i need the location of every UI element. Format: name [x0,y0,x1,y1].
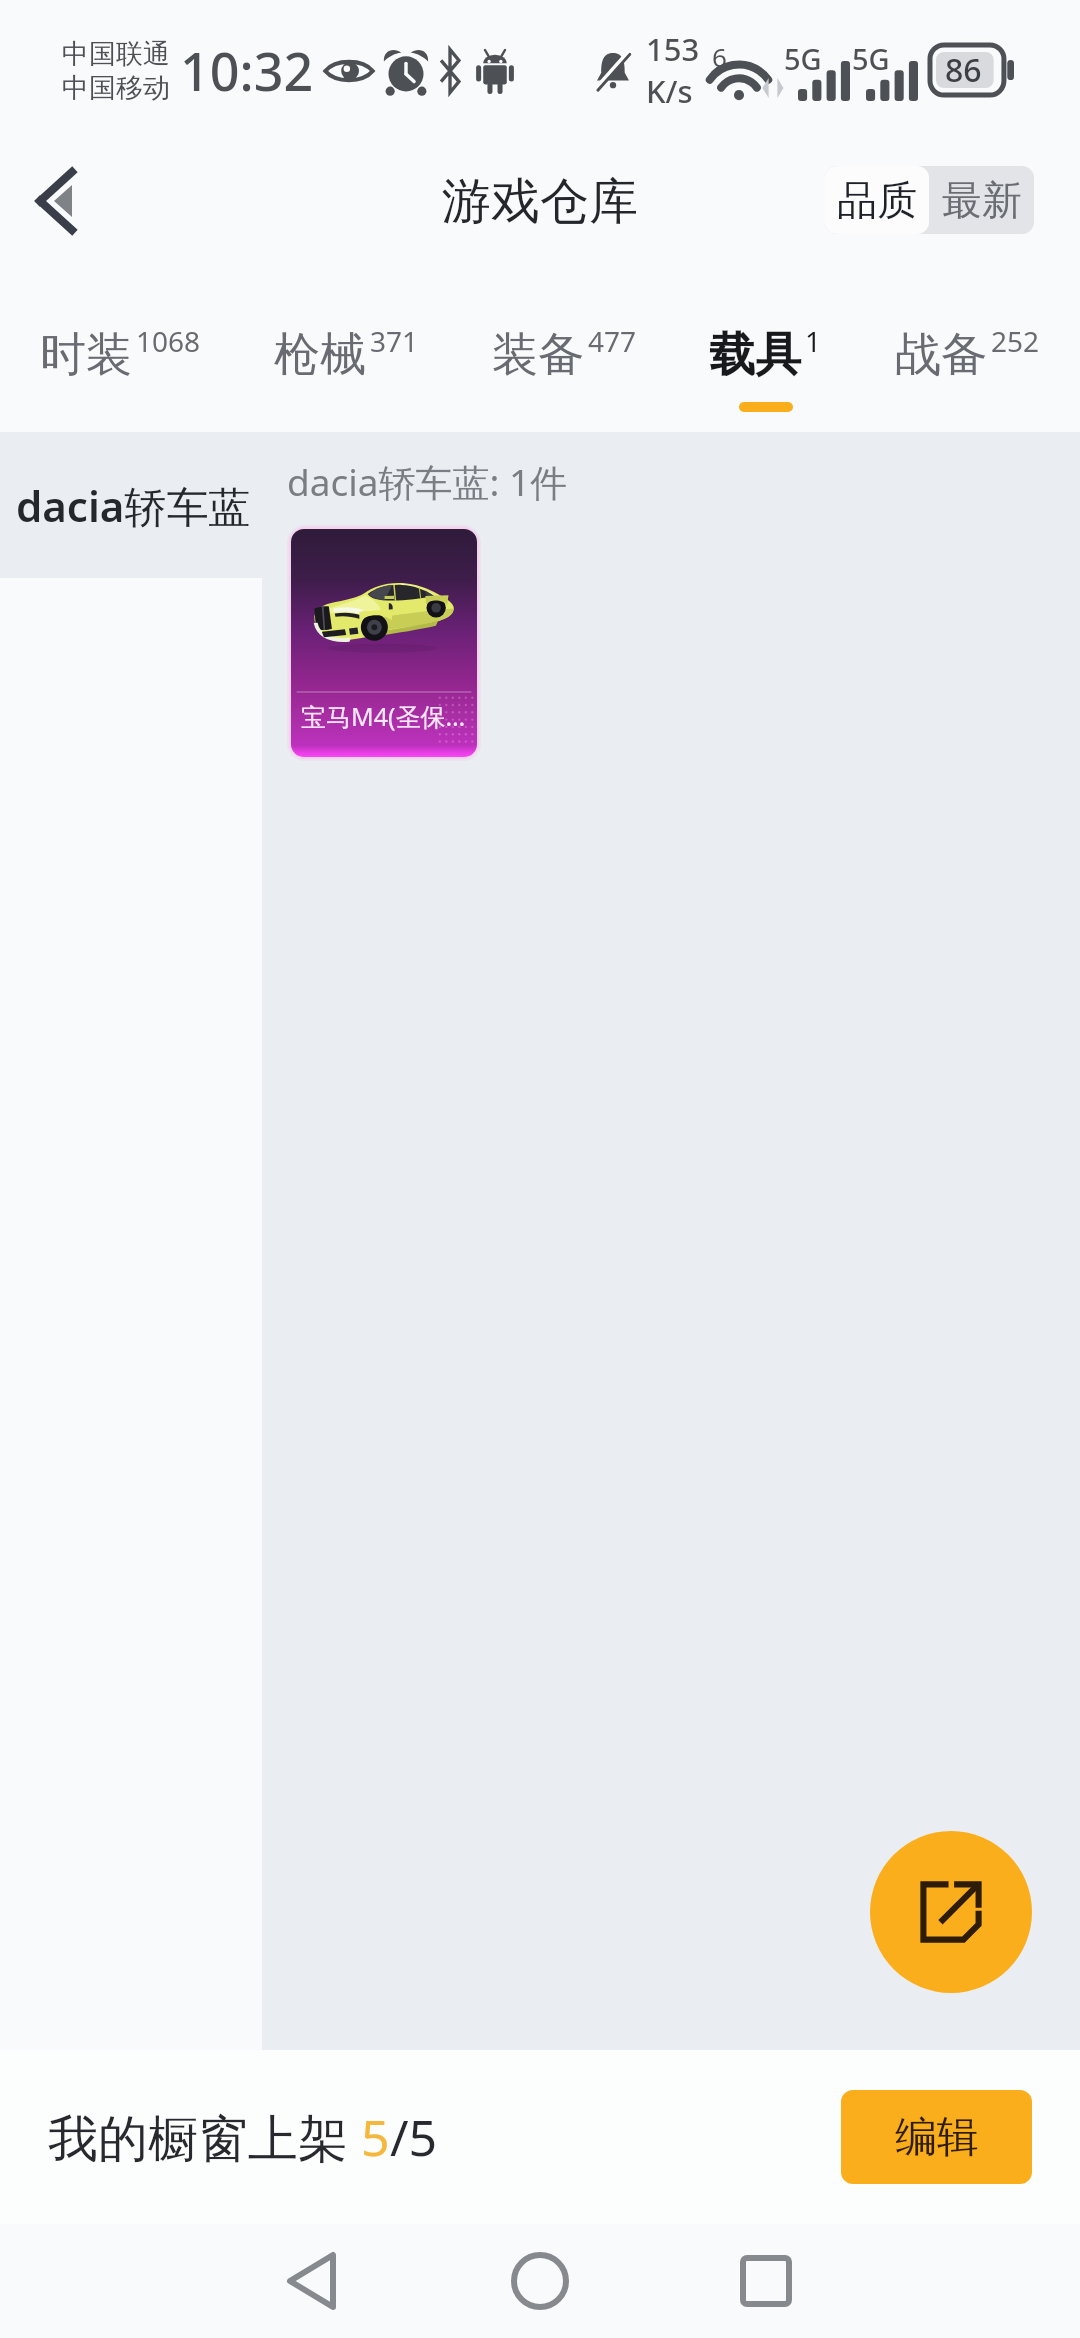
staticText: 编辑 [895,2111,979,2164]
staticText: 我的橱窗上架 [48,2103,361,2171]
staticText: 371 [370,322,419,360]
button[interactable]: Home [494,2235,586,2327]
button[interactable]: 宝马M4(圣保… [291,529,477,757]
button[interactable]: Back [14,169,98,253]
staticText: 5 [361,2103,390,2171]
staticText: 252 [991,322,1040,360]
staticText: 枪械 [274,326,366,384]
button[interactable]: dacia轿车蓝 [0,432,262,578]
staticText: 宝马M4(圣保… [301,699,466,733]
staticText: 86 [945,48,982,92]
staticText: 最新 [942,175,1022,225]
staticText: dacia轿车蓝: 1件 [287,456,568,507]
button[interactable]: Back [268,2235,360,2327]
staticText: 153 [646,28,700,70]
staticText: 1068 [136,322,201,360]
button[interactable]: 时装 [18,318,223,420]
staticText: /5 [390,2103,438,2171]
staticText: dacia轿车蓝 [16,477,251,534]
staticText: 游戏仓库 [442,171,638,233]
staticText: 1 [805,322,822,360]
button[interactable]: 品质 [825,166,929,234]
button[interactable]: 装备 [470,318,659,420]
staticText: 中国移动 [62,71,170,105]
staticText: 品质 [837,175,917,225]
staticText: 中国联通 [62,37,170,71]
staticText: 6 [712,39,727,74]
button[interactable]: Recent apps [720,2235,812,2327]
button[interactable]: 编辑 [841,2090,1032,2184]
staticText: 装备 [492,326,584,384]
button[interactable]: 载具 [687,318,844,420]
staticText: 时装 [40,326,132,384]
staticText: 5G [852,39,890,78]
staticText: 10:32 [180,35,314,106]
button[interactable]: Open in new window [870,1831,1032,1993]
staticText: 477 [588,322,637,360]
staticText: K/s [646,70,693,112]
staticText: 战备 [895,326,987,384]
staticText: 5G [784,39,822,78]
staticText: 载具 [709,326,801,384]
button[interactable]: 枪械 [252,318,441,420]
button[interactable]: 战备 [873,318,1062,420]
button[interactable]: 最新 [929,166,1034,234]
